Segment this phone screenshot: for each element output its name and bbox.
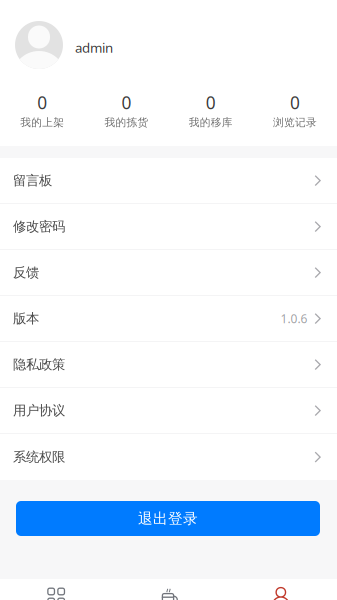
button[interactable]: 0 <box>253 91 337 129</box>
button[interactable]: 修改密码 <box>0 204 337 250</box>
staticText: 浏览记录 <box>273 116 317 129</box>
button[interactable]: 留言板 <box>0 158 337 204</box>
staticText: 反馈 <box>13 264 39 281</box>
staticText: 0 <box>290 91 300 114</box>
staticText: 0 <box>121 91 131 114</box>
button[interactable]: 我的 <box>225 579 337 600</box>
staticText: 1.0.6 <box>280 310 307 326</box>
staticText: 我的拣货 <box>104 116 148 129</box>
staticText: 我的移库 <box>189 116 233 129</box>
staticText: 退出登录 <box>138 509 198 527</box>
staticText: 用户协议 <box>13 402 65 419</box>
staticText: 0 <box>37 91 47 114</box>
button[interactable]: 系统权限 <box>0 434 337 480</box>
button[interactable]: 隐私政策 <box>0 342 337 388</box>
button[interactable]: 反馈 <box>0 250 337 296</box>
button[interactable]: 版本 <box>0 296 337 342</box>
staticText: 版本 <box>13 310 39 327</box>
staticText: 留言板 <box>13 172 52 189</box>
staticText: admin <box>75 39 113 56</box>
staticText: 系统权限 <box>13 449 65 465</box>
button[interactable]: 0 <box>0 91 84 129</box>
button[interactable]: 0 <box>168 91 253 129</box>
button[interactable]: admin <box>0 21 337 69</box>
button[interactable]: 0 <box>84 91 168 129</box>
staticText: 修改密码 <box>13 218 65 235</box>
staticText: 0 <box>206 91 216 114</box>
button[interactable]: 退出登录 <box>16 501 320 536</box>
staticText: 我的上架 <box>20 116 64 129</box>
button[interactable]: 工作台 <box>112 579 225 600</box>
button[interactable]: 首页 <box>0 579 112 600</box>
staticText: 隐私政策 <box>13 356 65 373</box>
button[interactable]: 用户协议 <box>0 388 337 434</box>
